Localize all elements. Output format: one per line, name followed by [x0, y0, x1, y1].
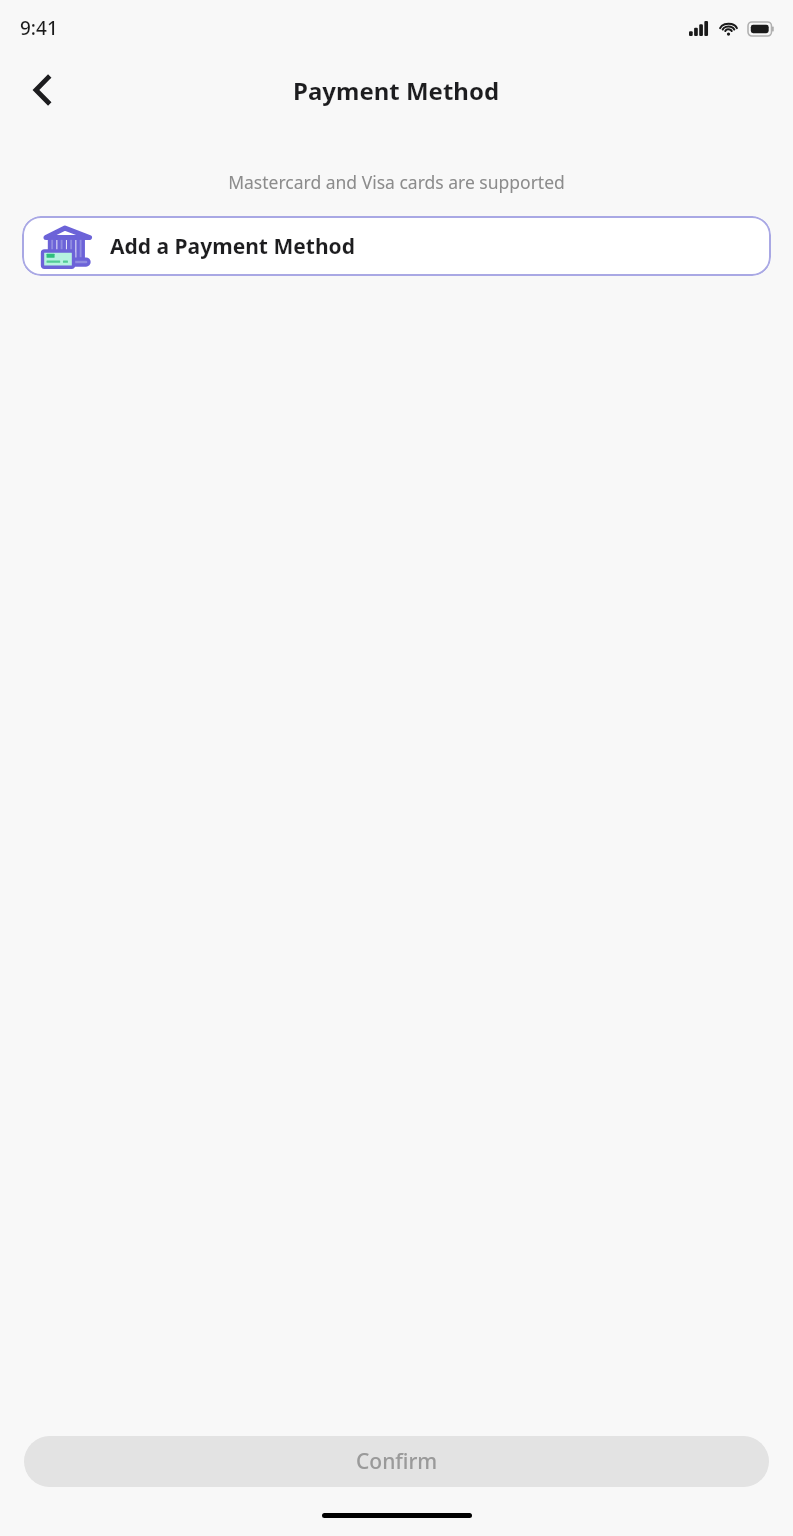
staticText: Add a Payment Method: [110, 232, 355, 261]
staticText: Confirm: [356, 1447, 438, 1476]
button[interactable]: Confirm: [24, 1436, 769, 1487]
button[interactable]: Back: [14, 62, 70, 118]
staticText: Payment Method: [293, 74, 500, 107]
staticText: Mastercard and Visa cards are supported: [20, 170, 773, 194]
staticText: 9:41: [20, 15, 58, 41]
button[interactable]: Add a Payment Method: [22, 216, 771, 276]
